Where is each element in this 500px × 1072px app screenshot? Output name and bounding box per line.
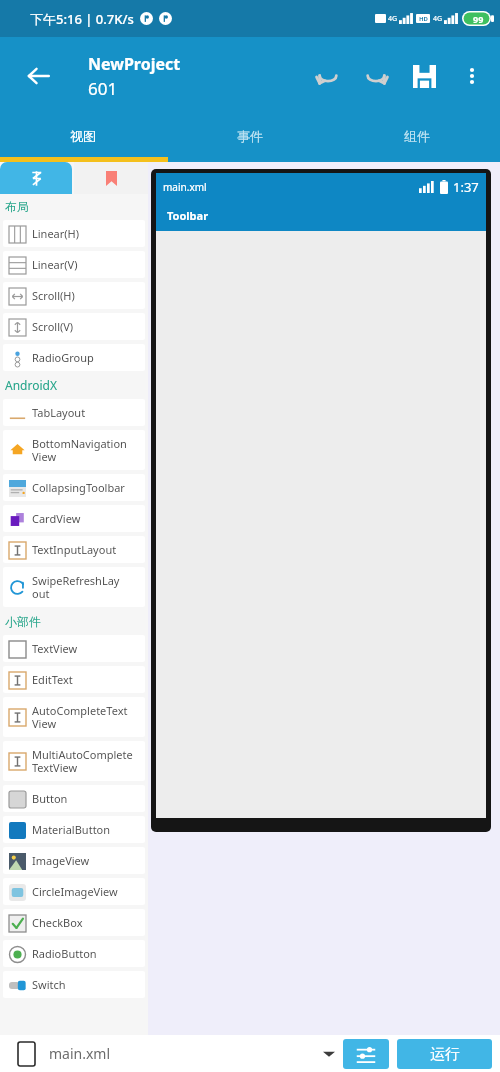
staticText: TextInputLayout	[32, 542, 117, 557]
staticText: 组件	[404, 128, 430, 144]
button[interactable]: TextInputLayout	[3, 536, 145, 563]
staticText: 4G	[433, 14, 443, 24]
staticText: Toolbar	[167, 208, 209, 223]
staticText: 视图	[70, 128, 96, 144]
button[interactable]: ImageView	[3, 847, 145, 874]
staticText: TabLayout	[32, 405, 86, 420]
button[interactable]: EditText	[3, 666, 145, 693]
staticText: HD	[419, 15, 428, 23]
staticText: Linear(H)	[32, 226, 80, 241]
staticText: CheckBox	[32, 915, 83, 930]
button[interactable]: Undo	[304, 52, 352, 100]
staticText: 布局	[5, 199, 29, 214]
staticText: ImageView	[32, 853, 90, 868]
staticText: CollapsingToolbar	[32, 480, 125, 495]
staticText: 4G	[388, 14, 398, 24]
staticText: MultiAutoComplete TextView	[32, 747, 133, 775]
button[interactable]: CollapsingToolbar	[3, 474, 145, 501]
staticText: 1:37	[453, 178, 479, 196]
button[interactable]: Switch	[3, 971, 145, 998]
staticText: 运行	[430, 1045, 460, 1064]
button[interactable]: RadioGroup	[3, 344, 145, 371]
button[interactable]: TextView	[3, 635, 145, 662]
button[interactable]: Back	[14, 52, 62, 100]
staticText: MaterialButton	[32, 822, 111, 837]
button[interactable]: SwipeRefreshLay out	[3, 567, 145, 607]
staticText: main.xml	[163, 180, 207, 194]
button[interactable]: More options	[448, 52, 496, 100]
button[interactable]: CircleImageView	[3, 878, 145, 905]
button[interactable]: TabLayout	[3, 399, 145, 426]
staticText: Button	[32, 791, 68, 806]
staticText: 小部件	[5, 614, 41, 629]
button[interactable]: Scroll(V)	[3, 313, 145, 340]
button[interactable]: MultiAutoComplete TextView	[3, 741, 145, 781]
button[interactable]: CardView	[3, 505, 145, 532]
staticText: RadioGroup	[32, 350, 94, 365]
staticText: 事件	[237, 128, 263, 144]
button[interactable]: Settings	[343, 1039, 389, 1069]
button[interactable]: Widgets	[0, 162, 72, 194]
staticText: main.xml	[49, 1044, 111, 1063]
button[interactable]: 运行	[397, 1039, 492, 1069]
staticText: 99	[473, 13, 484, 25]
staticText: Linear(V)	[32, 257, 78, 272]
button[interactable]: CheckBox	[3, 909, 145, 936]
staticText: NewProject	[88, 53, 181, 75]
staticText: BottomNavigation View	[32, 436, 127, 464]
staticText: Scroll(H)	[32, 288, 75, 303]
staticText: 下午5:16 | 0.7K/s	[30, 10, 134, 28]
staticText: TextView	[32, 641, 78, 656]
button[interactable]: Redo	[352, 52, 400, 100]
button[interactable]: RadioButton	[3, 940, 145, 967]
staticText: SwipeRefreshLay out	[32, 573, 120, 601]
button[interactable]: BottomNavigation View	[3, 430, 145, 470]
staticText: AndroidX	[5, 377, 57, 393]
button[interactable]: 组件	[333, 115, 500, 157]
staticText: 601	[88, 77, 118, 100]
button[interactable]: MaterialButton	[3, 816, 145, 843]
staticText: Switch	[32, 977, 66, 992]
staticText: RadioButton	[32, 946, 97, 961]
button[interactable]: Linear(V)	[3, 251, 145, 278]
staticText: CardView	[32, 511, 81, 526]
button[interactable]: AutoCompleteText View	[3, 697, 145, 737]
button[interactable]: Bookmarks	[74, 162, 148, 194]
button[interactable]: main.xml	[8, 1035, 343, 1072]
button[interactable]: 事件	[166, 115, 333, 157]
button[interactable]: Scroll(H)	[3, 282, 145, 309]
staticText: CircleImageView	[32, 884, 118, 899]
button[interactable]: Linear(H)	[3, 220, 145, 247]
staticText: AutoCompleteText View	[32, 703, 128, 731]
button[interactable]: Button	[3, 785, 145, 812]
staticText: EditText	[32, 672, 73, 687]
staticText: Scroll(V)	[32, 319, 74, 334]
button[interactable]: Save	[400, 52, 448, 100]
button[interactable]: 视图	[0, 115, 166, 157]
